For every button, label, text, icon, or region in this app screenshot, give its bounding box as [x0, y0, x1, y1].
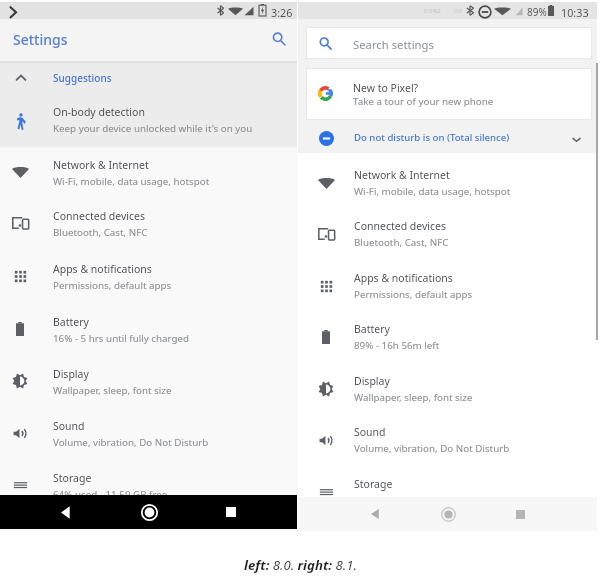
button[interactable]: Do not disturb is on (Total silence) [298, 121, 597, 153]
button[interactable]: Recents [507, 497, 533, 531]
staticText: 89% - 16h 56m left [354, 339, 440, 352]
button[interactable]: Apps & notifications [0, 248, 297, 298]
staticText: Display [53, 367, 89, 381]
button[interactable]: Sound [298, 411, 597, 461]
staticText: left: 8.0. right: 8.1. [244, 556, 357, 574]
staticText: Sound [53, 419, 85, 433]
button[interactable]: Apps & notifications [298, 257, 597, 307]
staticText: Battery [53, 315, 89, 329]
button[interactable]: Connected devices [298, 205, 597, 255]
button[interactable]: Search [264, 24, 294, 54]
staticText: Network & Internet [354, 168, 450, 182]
staticText: Wi-Fi, mobile, data usage, hotspot [53, 175, 210, 188]
staticText: Sound [354, 425, 386, 439]
staticText: Storage [354, 477, 393, 491]
staticText: Search settings [353, 37, 434, 52]
staticText: Permissions, default apps [53, 279, 172, 292]
staticText: 16% - 5 hrs until fully charged [53, 332, 190, 345]
button[interactable]: Storage [0, 457, 297, 507]
button[interactable]: Back [50, 495, 80, 529]
button[interactable]: Back [362, 497, 388, 531]
staticText: Apps & notifications [354, 271, 453, 285]
staticText: 3:26 [271, 5, 293, 20]
staticText: Bluetooth, Cast, NFC [53, 226, 148, 239]
staticText: Do not disturb is on (Total silence) [354, 131, 510, 144]
staticText: Display [354, 374, 390, 388]
button[interactable]: Recents [216, 495, 246, 529]
button[interactable]: On-body detection [0, 91, 297, 141]
staticText: Keep your device unlocked while it's on … [53, 122, 253, 135]
staticText: 0:0 [454, 7, 463, 15]
staticText: Apps & notifications [53, 262, 152, 276]
button[interactable]: Display [298, 360, 597, 410]
button[interactable]: Home [133, 495, 165, 529]
button[interactable]: Storage [298, 463, 597, 513]
staticText: 64% used - 11.59 GB free [53, 488, 168, 501]
button[interactable]: Connected devices [0, 195, 297, 245]
staticText: 89% [527, 5, 547, 19]
staticText: Battery [354, 322, 390, 336]
button[interactable]: Battery [298, 308, 597, 358]
staticText: Connected devices [354, 219, 447, 233]
button[interactable]: Network & Internet [298, 154, 597, 204]
staticText: Take a tour of your new phone [353, 95, 494, 108]
staticText: Wi-Fi, mobile, data usage, hotspot [354, 185, 511, 198]
staticText: 10:33 [561, 5, 589, 20]
button[interactable]: Network & Internet [0, 144, 297, 194]
staticText: Permissions, default apps [354, 288, 473, 301]
staticText: Storage [53, 471, 92, 485]
staticText: On-body detection [53, 105, 145, 119]
staticText: Volume, vibration, Do Not Disturb [53, 436, 209, 449]
staticText: Settings [13, 30, 68, 49]
button[interactable]: Search settings [306, 27, 592, 59]
button[interactable]: Display [0, 353, 297, 403]
button[interactable]: Home [435, 497, 461, 531]
staticText: Wallpaper, sleep, font size [53, 384, 172, 397]
staticText: Suggestions [53, 71, 112, 85]
staticText: Bluetooth, Cast, NFC [354, 236, 449, 249]
button[interactable]: Sound [0, 405, 297, 455]
staticText: Wallpaper, sleep, font size [354, 391, 473, 404]
staticText: Volume, vibration, Do Not Disturb [354, 442, 510, 455]
staticText: New to Pixel? [353, 81, 419, 95]
staticText: Connected devices [53, 209, 146, 223]
staticText: E:0%2 [424, 7, 441, 15]
button[interactable]: Suggestions [0, 63, 297, 91]
button[interactable]: New to Pixel? [306, 68, 592, 120]
button[interactable]: Battery [0, 301, 297, 351]
staticText: Network & Internet [53, 158, 149, 172]
